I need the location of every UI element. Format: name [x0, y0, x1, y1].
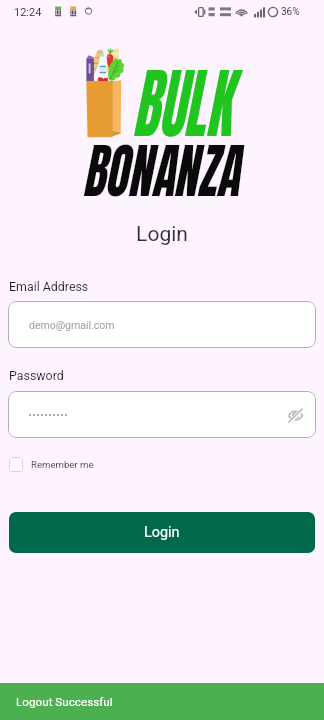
staticText: Email Address [9, 279, 89, 294]
staticText: Login [0, 222, 324, 247]
staticText: 36% [281, 6, 300, 18]
button[interactable]: demo@gmail.com [8, 301, 316, 348]
button[interactable]: Toggle password visibility [8, 391, 316, 438]
staticText: demo@gmail.com [29, 319, 115, 331]
staticText: Password [9, 368, 64, 383]
button[interactable]: Remember me [9, 456, 94, 472]
staticText: 12:24 [14, 6, 42, 19]
button[interactable]: Toggle password visibility [282, 402, 308, 428]
button[interactable]: Login [9, 512, 315, 553]
staticText: Remember me [31, 459, 94, 470]
staticText: Login [144, 524, 180, 541]
staticText: Logout Successful [16, 695, 113, 709]
button[interactable]: Logout Successful [0, 683, 324, 720]
